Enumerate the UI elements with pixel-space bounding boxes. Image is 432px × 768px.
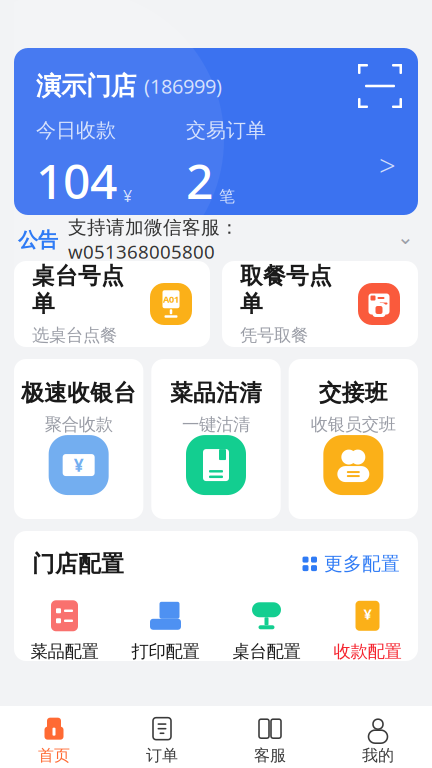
- staticText: ¥: [123, 185, 132, 206]
- staticText: 取餐号点单: [240, 262, 332, 318]
- staticText: ¥: [74, 454, 84, 477]
- staticText: 演示门店: [36, 70, 136, 101]
- staticText: 104: [36, 149, 117, 212]
- staticText: 订单: [146, 746, 178, 765]
- staticText: 交接班: [319, 379, 388, 407]
- staticText: 我的: [362, 746, 394, 765]
- staticText: >: [379, 146, 396, 185]
- staticText: (186999): [144, 73, 222, 99]
- button[interactable]: 客服: [216, 717, 324, 765]
- staticText: 打印配置: [131, 641, 199, 662]
- staticText: 桌台配置: [232, 641, 300, 662]
- button[interactable]: 菜品配置: [14, 600, 115, 662]
- button[interactable]: 演示门店: [14, 48, 418, 215]
- staticText: ¥: [363, 604, 371, 623]
- button[interactable]: 我的: [324, 717, 432, 765]
- button[interactable]: 桌台号点单: [14, 261, 210, 347]
- staticText: 收银员交班: [311, 414, 396, 435]
- button[interactable]: 菜品沽清: [151, 359, 281, 519]
- staticText: 桌台号点单: [32, 262, 124, 318]
- staticText: 聚合收款: [45, 414, 113, 435]
- staticText: 收款配置: [333, 641, 401, 662]
- button[interactable]: 交接班: [289, 359, 418, 519]
- button[interactable]: 桌台配置: [216, 600, 317, 662]
- staticText: 凭号取餐: [240, 325, 308, 346]
- staticText: 笔: [219, 187, 235, 206]
- button[interactable]: 更多配置: [302, 552, 400, 575]
- staticText: ⌄: [397, 226, 414, 248]
- staticText: 菜品配置: [30, 641, 98, 662]
- staticText: 支持请加微信客服：w051368005800: [68, 216, 239, 264]
- button[interactable]: 订单: [108, 717, 216, 765]
- staticText: 首页: [38, 746, 70, 765]
- staticText: 交易订单: [186, 118, 266, 143]
- staticText: 门店配置: [32, 550, 124, 578]
- staticText: 极速收银台: [21, 379, 136, 407]
- staticText: 公告: [18, 228, 58, 252]
- staticText: 一键沽清: [182, 414, 250, 435]
- button[interactable]: 取餐号点单: [222, 261, 418, 347]
- staticText: 菜品沽清: [170, 379, 262, 407]
- staticText: 更多配置: [324, 552, 400, 575]
- button[interactable]: 公告: [0, 221, 432, 259]
- button[interactable]: 打印配置: [115, 600, 216, 662]
- button[interactable]: ¥: [317, 600, 418, 662]
- staticText: 今日收款: [36, 118, 116, 143]
- button[interactable]: 首页: [0, 717, 108, 765]
- staticText: 2: [186, 149, 213, 212]
- staticText: 客服: [254, 746, 286, 765]
- staticText: A01: [163, 293, 179, 305]
- button[interactable]: 极速收银台: [14, 359, 143, 519]
- staticText: 选桌台点餐: [32, 325, 117, 346]
